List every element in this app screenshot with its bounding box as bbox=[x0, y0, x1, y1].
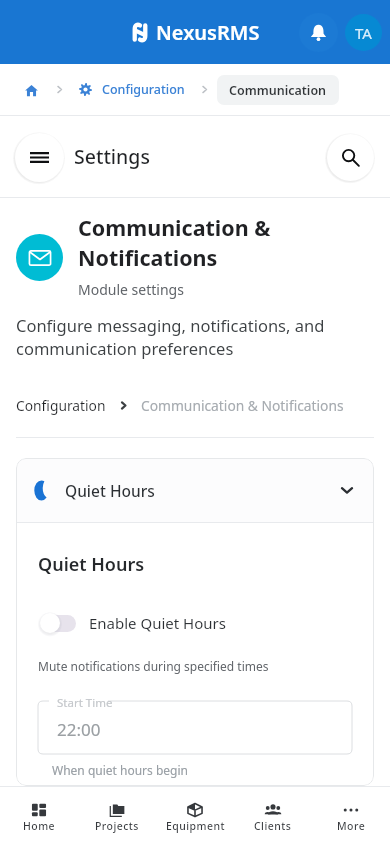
staticText: Clients bbox=[254, 819, 292, 833]
staticText: Settings bbox=[74, 143, 150, 170]
staticText: Communication & Notifications bbox=[141, 396, 344, 415]
staticText: Start Time bbox=[57, 695, 113, 711]
staticText: Quiet Hours bbox=[65, 480, 155, 501]
staticText: 22:00 bbox=[57, 718, 101, 741]
button[interactable]: Configuration bbox=[79, 81, 185, 98]
staticText: Quiet Hours bbox=[38, 552, 145, 577]
staticText: Projects bbox=[95, 819, 139, 833]
button[interactable]: Communication bbox=[217, 75, 339, 105]
button[interactable]: Notifications bbox=[299, 13, 338, 52]
staticText: NexusRMS bbox=[156, 19, 260, 46]
staticText: Module settings bbox=[78, 280, 184, 299]
staticText: communication preferences bbox=[16, 337, 234, 359]
staticText: When quiet hours begin bbox=[52, 762, 188, 778]
staticText: Mute notifications during specified time… bbox=[38, 658, 269, 674]
button[interactable]: Home bbox=[20, 79, 42, 101]
staticText: Configure messaging, notifications, and bbox=[16, 314, 325, 336]
staticText: Notifications bbox=[78, 243, 218, 272]
staticText: Configuration bbox=[102, 81, 185, 98]
button[interactable]: Menu bbox=[15, 133, 64, 182]
button[interactable]: Account TA bbox=[345, 14, 382, 51]
button[interactable]: Clients bbox=[234, 787, 312, 844]
staticText: Communication & bbox=[78, 213, 271, 242]
button[interactable]: Configuration bbox=[16, 396, 106, 415]
button[interactable]: Search bbox=[327, 134, 374, 181]
button[interactable]: Projects bbox=[78, 787, 156, 844]
staticText: TA bbox=[355, 23, 372, 43]
button[interactable]: More bbox=[312, 787, 390, 844]
staticText: Equipment bbox=[166, 819, 225, 833]
button[interactable]: Home bbox=[0, 787, 78, 844]
staticText: Home bbox=[23, 819, 56, 833]
button[interactable]: Equipment bbox=[156, 787, 234, 844]
staticText: Communication bbox=[229, 82, 327, 99]
staticText: More bbox=[337, 819, 366, 833]
button[interactable]: Enable Quiet Hours bbox=[38, 611, 226, 635]
staticText: Enable Quiet Hours bbox=[89, 613, 226, 633]
button[interactable]: Quiet Hours bbox=[16, 458, 374, 522]
